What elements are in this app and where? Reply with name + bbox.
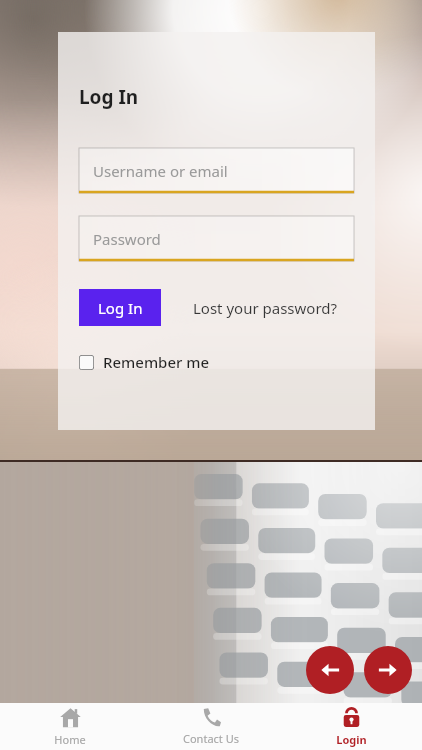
- staticText: Contact Us: [183, 731, 239, 746]
- button[interactable]: Password: [79, 216, 354, 261]
- staticText: Log In: [79, 84, 139, 110]
- button[interactable]: Lost your password?: [189, 294, 342, 322]
- button[interactable]: Log In: [79, 289, 161, 326]
- button[interactable]: Username or email: [79, 148, 354, 193]
- button[interactable]: Contact Us: [140, 703, 281, 750]
- staticText: Lost your password?: [193, 298, 338, 318]
- button[interactable]: Home: [0, 703, 140, 750]
- button[interactable]: Back: [306, 646, 354, 694]
- button[interactable]: Login: [281, 703, 422, 750]
- button[interactable]: Forward: [364, 646, 412, 694]
- button[interactable]: Remember me: [77, 348, 212, 376]
- staticText: Password: [93, 229, 161, 249]
- staticText: Username or email: [93, 161, 228, 181]
- staticText: Home: [54, 732, 86, 747]
- staticText: Remember me: [103, 352, 210, 372]
- staticText: Login: [336, 732, 367, 747]
- staticText: Log In: [98, 298, 143, 318]
